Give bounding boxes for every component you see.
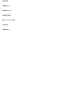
staticText: Full name [2, 0, 8, 2]
staticText: amelia@mail.co [2, 14, 11, 16]
staticText: Amelia Hart [2, 29, 9, 30]
staticText: January 2021 - Gold [2, 19, 15, 21]
staticText: Amelia Hart [2, 5, 9, 7]
staticText: Email address [2, 9, 12, 11]
staticText: Full name [2, 24, 8, 26]
